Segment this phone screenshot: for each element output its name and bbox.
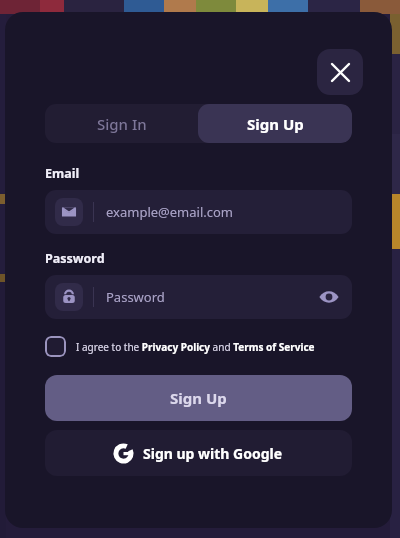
button[interactable]: Sign up with Google (45, 430, 352, 476)
button[interactable]: example@email.com (45, 190, 352, 234)
staticText: Sign up with Google (143, 444, 283, 463)
button[interactable]: Sign In (45, 104, 198, 143)
button[interactable]: Sign Up (45, 375, 352, 421)
staticText: Sign Up (247, 114, 304, 134)
staticText: Sign Up (170, 388, 227, 408)
staticText: Sign In (97, 114, 147, 134)
button[interactable]: I agree to the Privacy Policy and Terms … (45, 336, 352, 357)
staticText: I agree to the Privacy Policy and Terms … (76, 340, 315, 354)
staticText: example@email.com (106, 203, 233, 221)
staticText: Password (45, 250, 105, 267)
button[interactable]: Show password (312, 280, 346, 314)
button[interactable]: Sign Up (198, 104, 352, 143)
staticText: Password (106, 288, 165, 306)
staticText: Email (45, 165, 80, 182)
button[interactable]: Password (45, 275, 352, 319)
button[interactable]: Close (317, 49, 363, 95)
